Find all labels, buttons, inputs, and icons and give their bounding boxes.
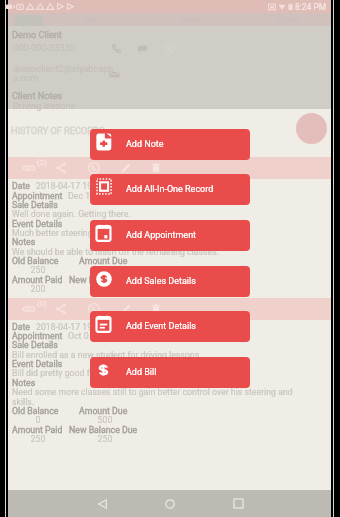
button[interactable]: Share <box>54 161 68 175</box>
staticText: Old Balance <box>12 406 59 416</box>
staticText: Date <box>12 181 31 191</box>
staticText: Add Note <box>126 139 164 150</box>
button[interactable]: Delete <box>149 161 163 175</box>
staticText: 0 <box>12 415 64 425</box>
staticText: Much better steering <box>12 228 320 238</box>
staticText: skills. <box>12 397 320 407</box>
staticText: 8:24 PM <box>295 2 327 12</box>
staticText: Driving lessons <box>13 100 76 111</box>
staticText: We should be able to finish off the rema… <box>12 247 320 257</box>
button[interactable]: Email <box>108 68 121 81</box>
staticText: Appointment <box>12 191 63 201</box>
button[interactable]: Add Bill <box>90 357 250 388</box>
button[interactable]: Edit <box>119 302 133 316</box>
staticText: Event Details <box>12 219 63 229</box>
staticText: Need some more classes still to gain bet… <box>12 387 320 397</box>
button[interactable]: Home <box>150 490 190 517</box>
staticText <box>79 265 131 275</box>
button[interactable]: Add Note <box>90 129 250 160</box>
staticText: Notes <box>12 237 36 247</box>
button[interactable]: Message <box>136 42 149 55</box>
staticText: (0) <box>37 299 48 308</box>
staticText: Demo Client <box>12 29 62 40</box>
staticText: Old Balance <box>12 256 59 266</box>
staticText: democlient2@siyabcapp <box>13 63 114 74</box>
staticText: s.com <box>13 72 39 83</box>
staticText: New Balance Due <box>69 275 138 285</box>
staticText: New Balance Due <box>69 425 138 435</box>
button[interactable]: Call <box>87 161 101 175</box>
staticText: 000-000-33330 <box>13 42 75 53</box>
staticText: Well done again. Getting there. <box>12 209 320 219</box>
button[interactable]: Add Event Details <box>90 311 250 342</box>
staticText: Client Notes <box>12 90 63 101</box>
staticText: 250 <box>12 265 64 275</box>
staticText: HISTORY OF RECORDS <box>11 125 105 136</box>
button[interactable]: Attachments <box>22 161 36 175</box>
button[interactable]: Delete <box>149 302 163 316</box>
staticText: 200 <box>12 284 64 294</box>
staticText: Sale Details <box>12 200 58 210</box>
staticText: Add Appointment <box>126 230 197 241</box>
staticText: (2) <box>37 158 48 167</box>
button[interactable]: Attachments <box>22 302 36 316</box>
staticText <box>79 284 131 294</box>
button[interactable]: Recent apps <box>218 490 258 517</box>
button[interactable]: Add Appointment <box>90 220 250 251</box>
button[interactable]: Add Sales Details <box>90 266 250 297</box>
button[interactable]: Back <box>82 490 122 517</box>
staticText: Add All-In-One Record <box>126 184 214 195</box>
staticText: 250 <box>12 434 64 444</box>
staticText: Add Sales Details <box>126 276 196 287</box>
staticText: Dec 1 <box>68 191 91 201</box>
staticText: Notes <box>12 378 36 388</box>
button[interactable]: Share <box>54 302 68 316</box>
button[interactable]: Call <box>110 42 123 55</box>
staticText: Amount Paid <box>12 425 63 435</box>
staticText: 2018-04-17 19:4 <box>36 322 100 332</box>
staticText: 500 <box>79 415 131 425</box>
staticText: Date <box>12 322 31 332</box>
staticText: Oct 0 <box>68 331 89 341</box>
staticText: Bill did pretty good for his first time. <box>12 368 320 378</box>
button[interactable]: Call <box>87 302 101 316</box>
staticText: Amount Paid <box>12 275 63 285</box>
staticText: Amount Due <box>79 256 128 266</box>
staticText: 2018-04-17 19:4 <box>36 181 100 191</box>
staticText: Add Bill <box>126 367 157 378</box>
staticText: Add Event Details <box>126 321 197 332</box>
staticText: Amount Due <box>79 406 128 416</box>
button[interactable]: Edit <box>119 161 133 175</box>
staticText: Bill enrolled as a new student for drivi… <box>12 350 320 360</box>
button[interactable]: Close actions menu <box>296 113 327 144</box>
staticText: Event Details <box>12 359 63 369</box>
staticText: Appointment <box>12 331 63 341</box>
staticText: Sale Details <box>12 340 58 350</box>
staticText: 250 <box>79 434 131 444</box>
button[interactable]: Add All-In-One Record <box>90 174 250 205</box>
